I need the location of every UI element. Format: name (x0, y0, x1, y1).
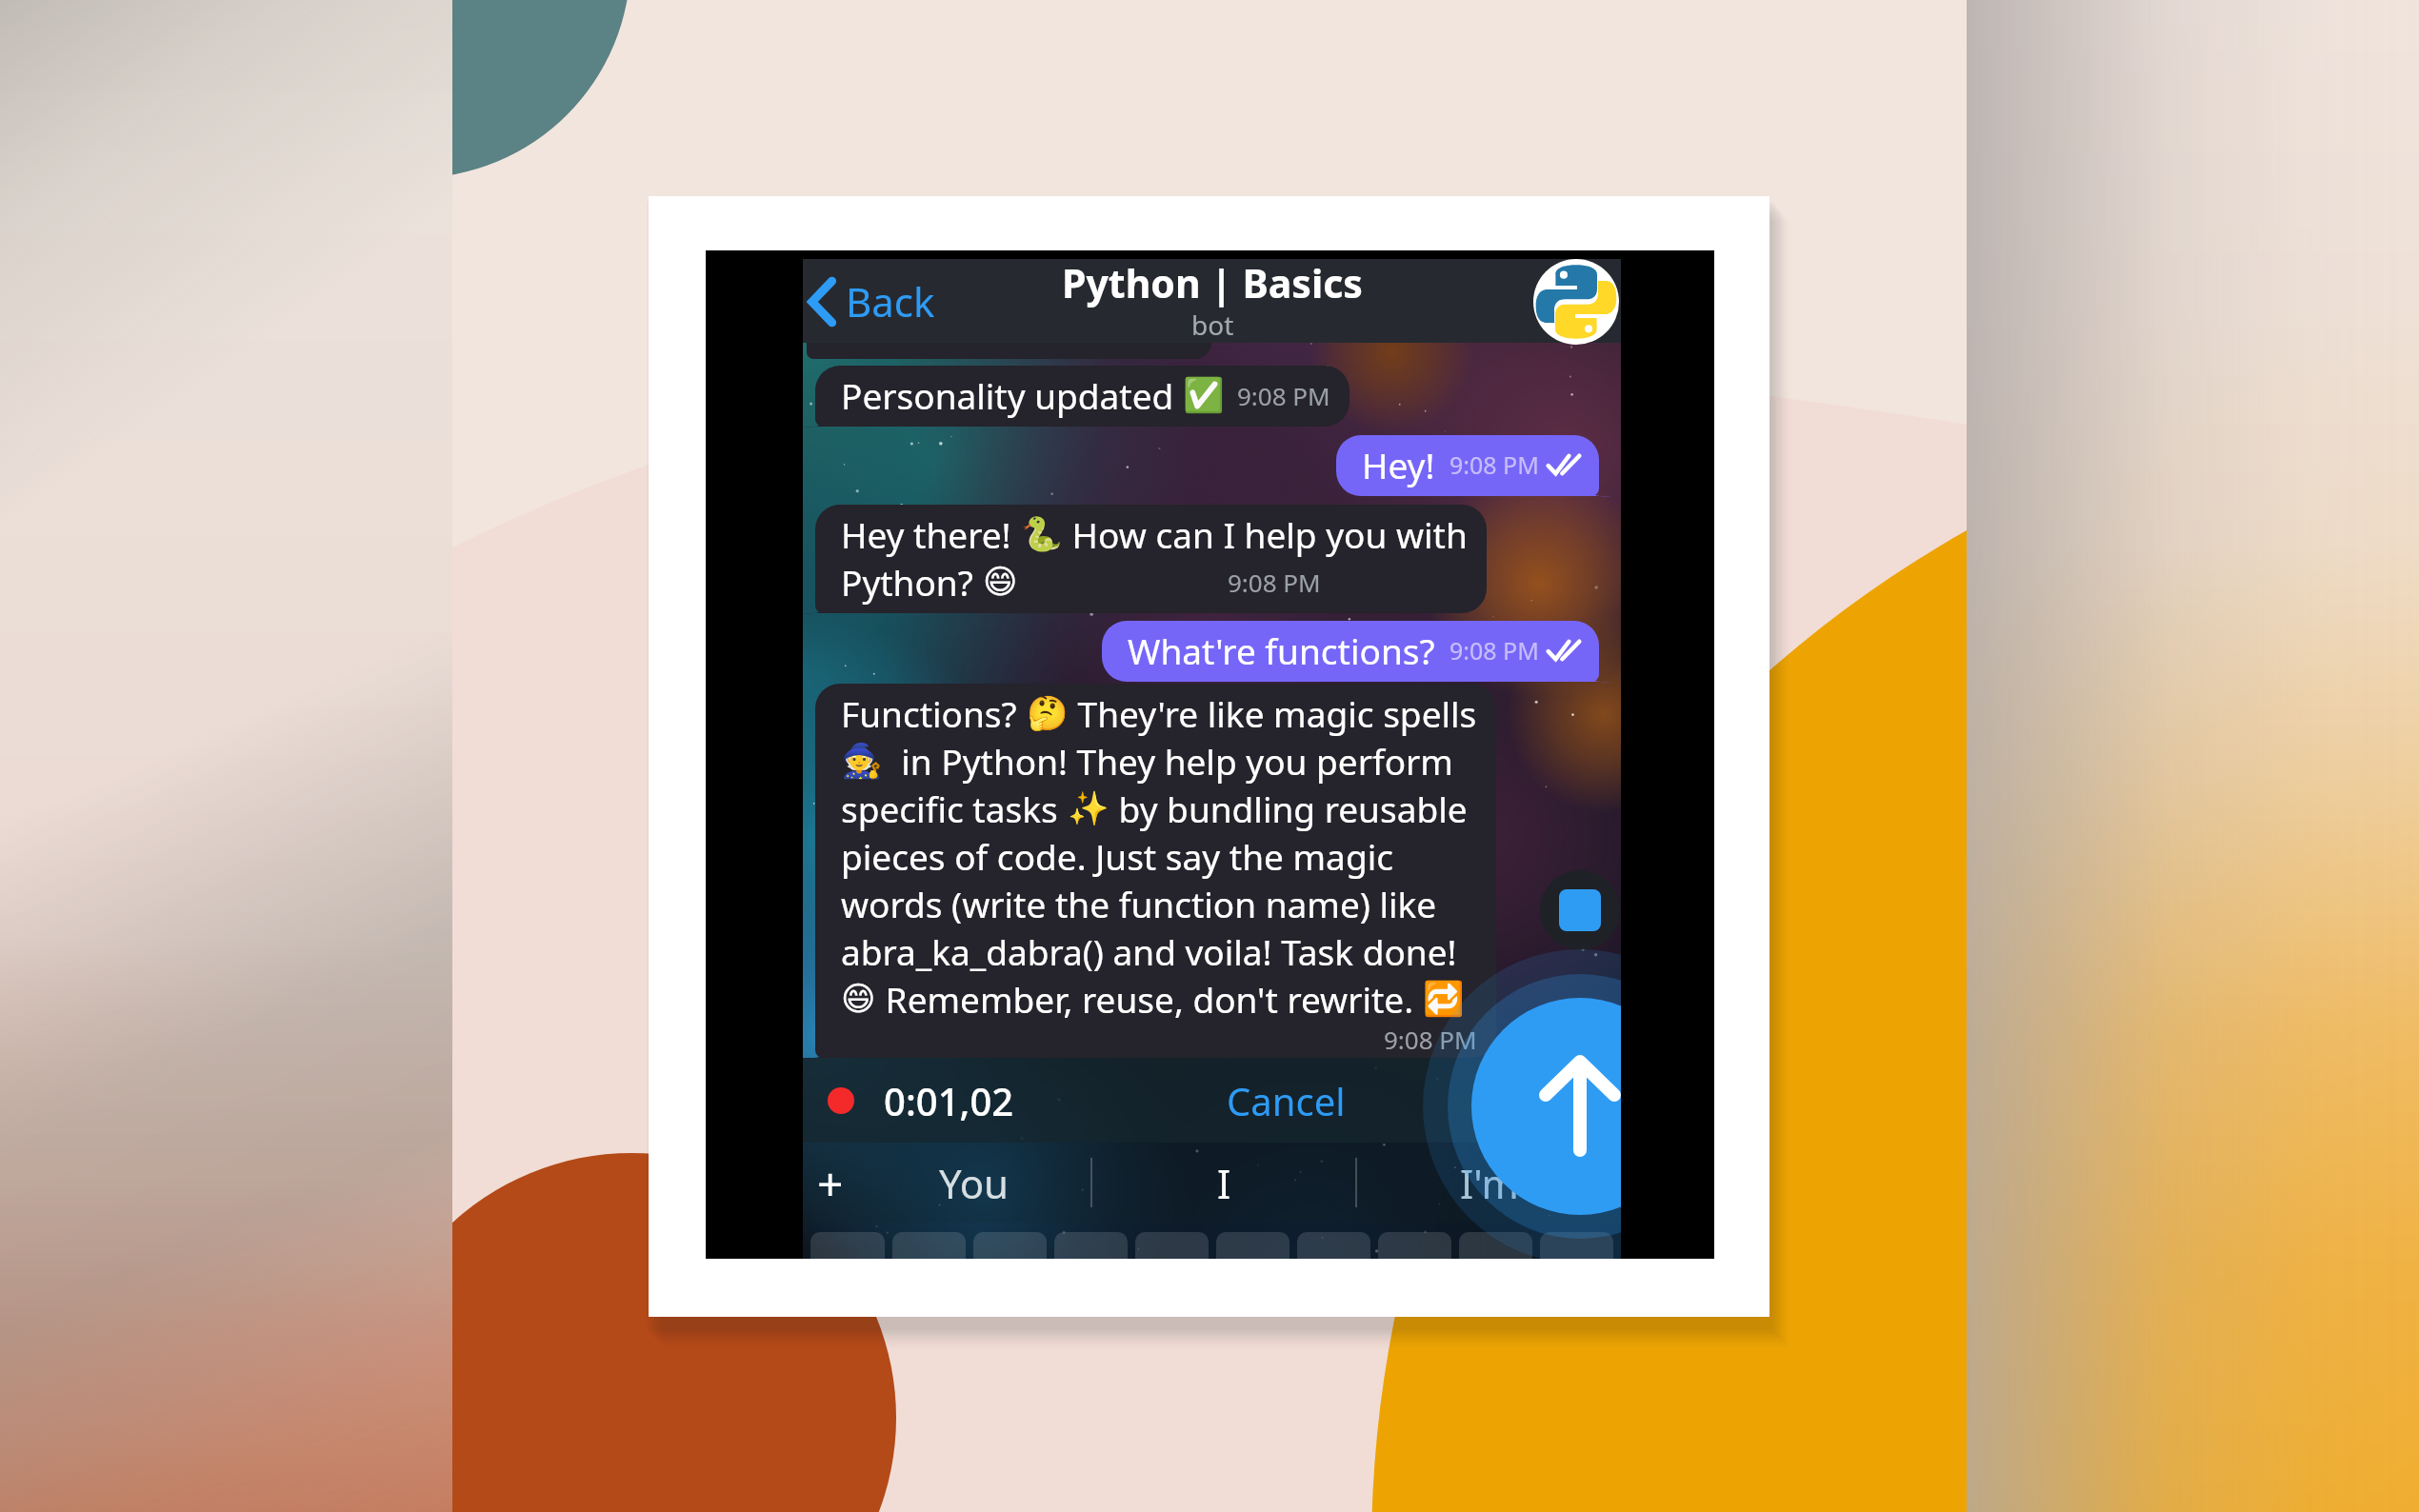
staticText: pieces of code. Just say the magic (841, 832, 1393, 880)
staticText: 🔁 (1423, 980, 1465, 1019)
button[interactable]: You (857, 1143, 1090, 1223)
staticText: You (939, 1156, 1010, 1210)
button[interactable]: I (1092, 1143, 1355, 1223)
staticText: 🧙 (841, 742, 883, 781)
staticText: 🐍 (1021, 515, 1063, 554)
staticText: Cancel (1227, 1075, 1346, 1126)
button[interactable]: Stop recording (1540, 870, 1620, 950)
staticText: They're like magic spells (1069, 689, 1477, 737)
button[interactable]: Functions? (815, 684, 1496, 1058)
staticText: specific tasks (841, 785, 1068, 832)
staticText: 9:08 PM (1384, 1023, 1477, 1050)
staticText: words (write the function name) like (841, 880, 1437, 927)
staticText: 9:08 PM (1449, 448, 1539, 481)
button[interactable]: Send voice message (1471, 998, 1621, 1215)
staticText: 🤔 (1027, 694, 1069, 733)
staticText: 0:01,02 (884, 1075, 1014, 1126)
staticText: 😄 (841, 980, 876, 1019)
staticText: + (817, 1152, 844, 1214)
staticText: How can I help you with (1063, 510, 1468, 558)
staticText: Back (846, 274, 935, 328)
button[interactable]: Cancel (1213, 1065, 1359, 1136)
staticText: abra_ka_dabra() and voila! Task done! (841, 927, 1457, 975)
staticText: Hey! (1362, 441, 1435, 488)
button[interactable]: Hey there! (815, 505, 1487, 613)
button[interactable]: Attach (803, 1143, 857, 1223)
button[interactable]: Hey! (1336, 435, 1599, 496)
staticText: 9:08 PM (1228, 566, 1321, 599)
staticText: What're functions? (1128, 627, 1435, 674)
staticText: Personality updated (841, 371, 1183, 419)
button[interactable]: I'm (1357, 1143, 1621, 1223)
staticText: 9:08 PM (1449, 634, 1539, 666)
staticText: 😄 (983, 563, 1018, 602)
button[interactable]: What're functions? (1102, 621, 1599, 682)
staticText: I (1217, 1156, 1231, 1210)
staticText: ✨ (1068, 789, 1110, 828)
button[interactable]: Back (803, 267, 945, 336)
staticText: Python | Basics (1062, 256, 1363, 309)
staticText: in Python! They help you perform (883, 737, 1453, 785)
staticText: Remember, reuse, don't rewrite. (876, 975, 1423, 1023)
staticText: Hey there! (841, 510, 1021, 558)
staticText: bot (1191, 307, 1234, 343)
staticText: Functions? (841, 689, 1027, 737)
staticText: 9:08 PM (1237, 379, 1330, 412)
staticText: I'm (1460, 1156, 1519, 1210)
staticText: by bundling reusable (1110, 785, 1468, 832)
button[interactable]: Personality updated (815, 366, 1349, 427)
staticText: ✅ (1183, 376, 1225, 415)
button[interactable]: Chat profile (1533, 259, 1619, 345)
staticText: Python? (841, 558, 983, 606)
